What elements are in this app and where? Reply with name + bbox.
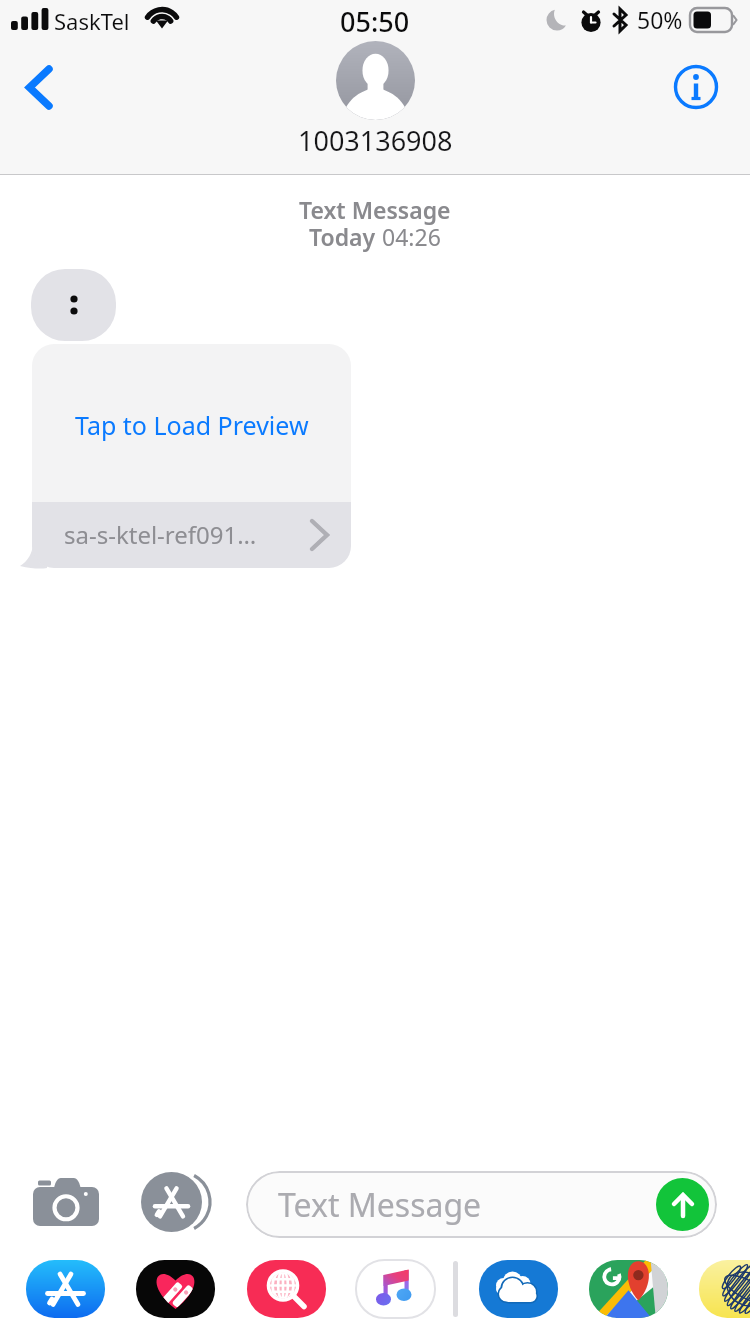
staticText: SaskTel [54,6,130,36]
button[interactable]: 1003136908 [298,40,453,159]
staticText: 1003136908 [298,122,453,159]
button[interactable]: App Store [136,1171,214,1233]
button[interactable]: Back [4,52,74,122]
button[interactable]: Info [661,52,731,122]
staticText: Tap to Load Preview [75,408,309,442]
button[interactable]: Camera [20,1172,112,1232]
button[interactable]: Tap to Load Preview [32,344,351,568]
button[interactable]: Text Message [246,1171,717,1238]
button[interactable]: Image Search [247,1260,326,1318]
button[interactable]: Send [656,1178,709,1231]
button[interactable]: Health [136,1260,215,1318]
staticText: Text Message [278,1183,482,1227]
button[interactable]: Maps [589,1260,668,1318]
staticText: sa-s-ktel-ref091… [64,518,257,551]
staticText: 05:50 [340,3,410,40]
staticText: 04:26 [382,221,441,252]
staticText: Text Message [299,194,451,225]
button[interactable]: Music [356,1260,435,1318]
staticText: 50% [637,4,683,35]
button[interactable]: Notes [699,1260,750,1318]
staticText: Today [309,221,382,252]
button[interactable] [31,269,116,341]
button[interactable]: App Store [26,1260,105,1318]
button[interactable]: Cloud [479,1260,558,1318]
